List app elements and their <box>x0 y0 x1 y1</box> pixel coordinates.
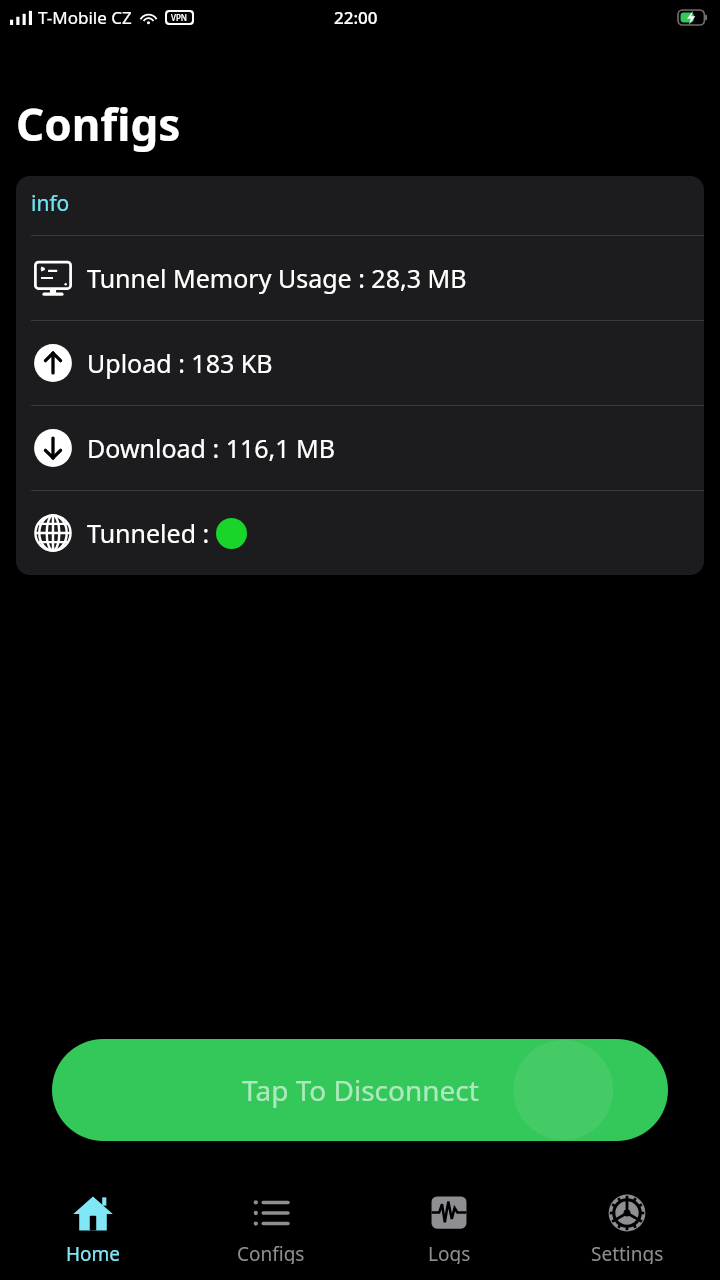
staticText: Logs <box>428 1241 471 1264</box>
button[interactable]: Upload : 183 KB <box>16 321 704 405</box>
other: Home <box>70 1190 116 1236</box>
button[interactable]: Tunnel Memory Usage : 28,3 MB <box>16 236 704 320</box>
staticText: Tap To Disconnect <box>242 1071 479 1109</box>
staticText: info <box>31 189 70 218</box>
staticText: Home <box>66 1241 121 1264</box>
other: Configs <box>248 1190 294 1236</box>
staticText: Tunnel Memory Usage : 28,3 MB <box>87 261 467 295</box>
staticText: Configs <box>16 94 181 154</box>
staticText: Tunneled : <box>87 516 216 550</box>
button[interactable]: Settings <box>542 1186 712 1268</box>
button[interactable]: Download : 116,1 MB <box>16 406 704 490</box>
button[interactable]: Home <box>8 1186 178 1268</box>
button[interactable]: Logs <box>364 1186 534 1268</box>
button[interactable]: Configs <box>186 1186 356 1268</box>
staticText: T-Mobile CZ <box>38 6 132 29</box>
staticText: Download : 116,1 MB <box>87 431 335 465</box>
staticText: 22:00 <box>334 6 378 29</box>
staticText: Upload : 183 KB <box>87 346 273 380</box>
staticText: Configs <box>237 1241 305 1264</box>
button[interactable]: Tunneled : <box>16 491 704 575</box>
other: Settings <box>604 1190 650 1236</box>
button[interactable]: Tap To Disconnect <box>52 1039 668 1141</box>
staticText: Settings <box>591 1241 664 1264</box>
staticText: VPN <box>171 12 188 23</box>
other: Logs <box>426 1190 472 1236</box>
